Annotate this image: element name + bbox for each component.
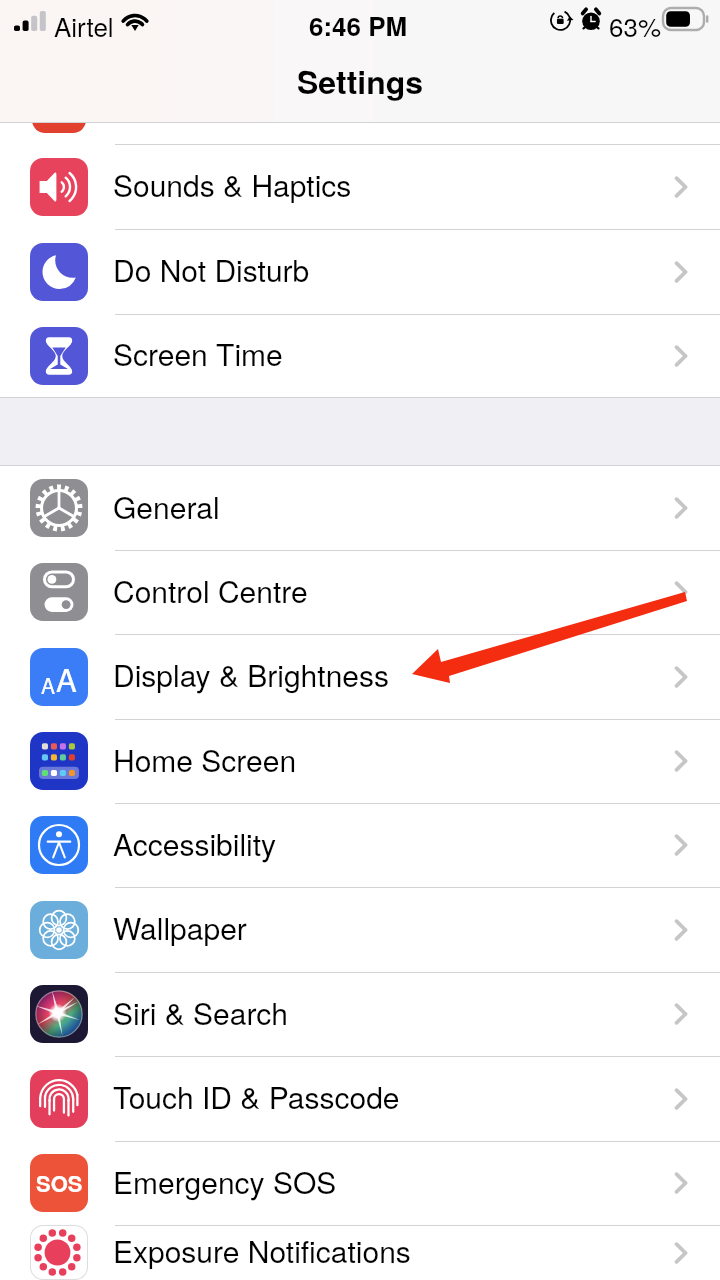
button[interactable]: Exposure Notifications <box>0 1225 720 1280</box>
staticText: A <box>41 670 56 700</box>
button[interactable]: SOS <box>0 1141 720 1225</box>
staticText: Exposure Notifications <box>113 1229 411 1272</box>
button[interactable]: Screen Time <box>0 314 720 397</box>
staticText: 6:46 PM <box>309 7 408 44</box>
staticText: Home Screen <box>113 738 297 781</box>
button[interactable]: Wallpaper <box>0 887 720 972</box>
staticText: Wallpaper <box>113 906 247 949</box>
staticText: Screen Time <box>113 332 283 375</box>
staticText: Accessibility <box>113 822 277 865</box>
staticText: Touch ID & Passcode <box>113 1075 400 1118</box>
staticText: Siri & Search <box>113 991 288 1034</box>
staticText: A <box>56 656 77 700</box>
staticText: Control Centre <box>113 569 308 612</box>
button[interactable]: Accessibility <box>0 803 720 887</box>
staticText: Settings <box>297 58 424 104</box>
button[interactable]: A <box>0 634 720 719</box>
staticText: Sounds & Haptics <box>113 163 352 206</box>
staticText: Airtel <box>54 7 114 44</box>
button[interactable]: Sounds & Haptics <box>0 144 720 229</box>
button[interactable]: General <box>0 466 720 550</box>
button[interactable]: Control Centre <box>0 550 720 634</box>
button[interactable]: Siri & Search <box>0 972 720 1056</box>
staticText: General <box>113 485 220 528</box>
staticText: Do Not Disturb <box>113 248 310 291</box>
button[interactable]: Home Screen <box>0 719 720 803</box>
button[interactable]: Do Not Disturb <box>0 229 720 314</box>
staticText: Emergency SOS <box>113 1160 337 1203</box>
button[interactable]: Touch ID & Passcode <box>0 1056 720 1141</box>
staticText: 63% <box>609 7 662 44</box>
staticText: SOS <box>36 1167 83 1199</box>
staticText: Display & Brightness <box>113 653 389 696</box>
